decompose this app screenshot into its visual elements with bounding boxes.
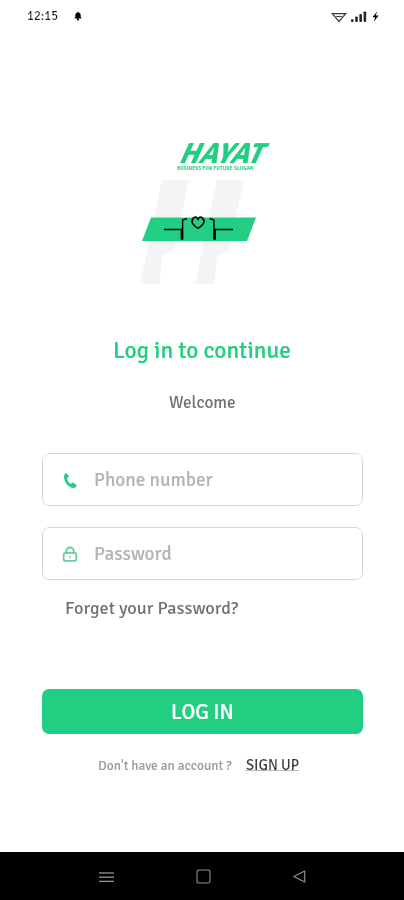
button[interactable]: Phone number bbox=[42, 453, 363, 506]
staticText: Password bbox=[94, 542, 172, 566]
staticText: Don't have an account ? bbox=[98, 757, 232, 774]
staticText: BUSINESS FOR FUTURE SLOGAN bbox=[177, 165, 254, 171]
staticText: Phone number bbox=[94, 468, 213, 492]
button[interactable]: Home bbox=[179, 852, 227, 900]
button[interactable]: Recent apps bbox=[82, 852, 130, 900]
staticText: HAYAT bbox=[178, 136, 261, 172]
staticText: LOG IN bbox=[171, 699, 234, 725]
button[interactable]: Back bbox=[275, 852, 323, 900]
staticText: Welcome bbox=[169, 392, 236, 413]
button[interactable]: LOG IN bbox=[42, 689, 363, 734]
button[interactable]: Forget your Password? bbox=[63, 595, 241, 621]
button[interactable]: SIGN UP bbox=[246, 756, 300, 774]
staticText: 12:15 bbox=[27, 8, 59, 24]
staticText: Log in to continue bbox=[113, 336, 291, 365]
button[interactable]: Password bbox=[42, 527, 363, 580]
